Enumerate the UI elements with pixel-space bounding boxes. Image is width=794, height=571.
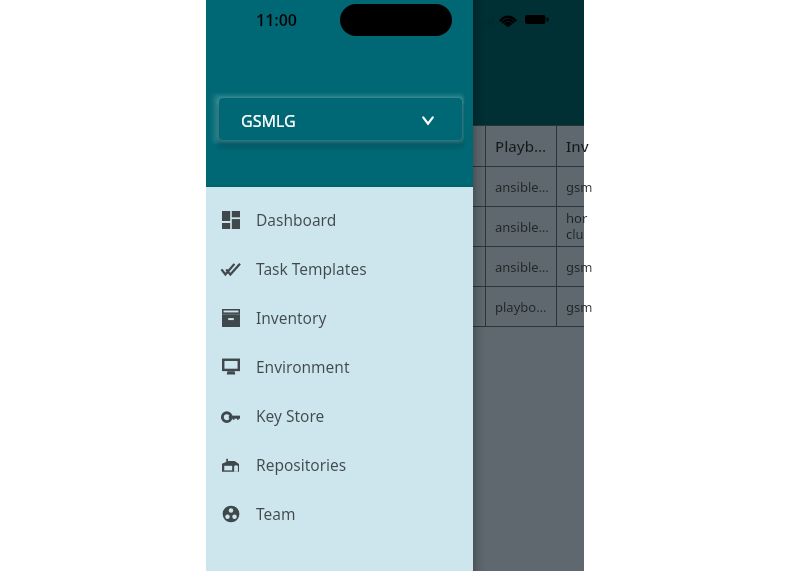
staticText: Environment [256,356,350,377]
staticText: gsm [566,178,593,196]
button[interactable]: Dashboard [206,194,473,243]
button[interactable]: Inventory [206,292,473,341]
staticText: gsm [566,258,593,276]
staticText: gsm [566,298,593,316]
staticText: Inv [566,136,589,156]
staticText: 11:00 [256,9,298,31]
staticText: ansible… [495,218,549,236]
staticText: hor [566,209,588,227]
staticText: Dashboard [256,209,337,230]
button[interactable]: Key Store [206,390,473,439]
staticText: Team [256,503,296,524]
staticText: clu [566,225,584,243]
button[interactable]: Close navigation drawer [473,0,584,571]
button[interactable]: Select organisation GSMLG [219,98,462,140]
staticText: Repositories [256,454,347,475]
staticText: ansible… [495,178,549,196]
staticText: GSMLG [241,110,296,132]
staticText: Task Templates [256,258,367,279]
button[interactable]: Task Templates [206,243,473,292]
staticText: Inventory [256,307,327,328]
staticText: Playb… [495,136,547,156]
button[interactable]: Environment [206,341,473,390]
staticText: playbo… [495,298,547,316]
button[interactable]: Repositories [206,439,473,488]
button[interactable]: Team [206,488,473,537]
staticText: ansible… [495,258,549,276]
staticText: Key Store [256,405,325,426]
